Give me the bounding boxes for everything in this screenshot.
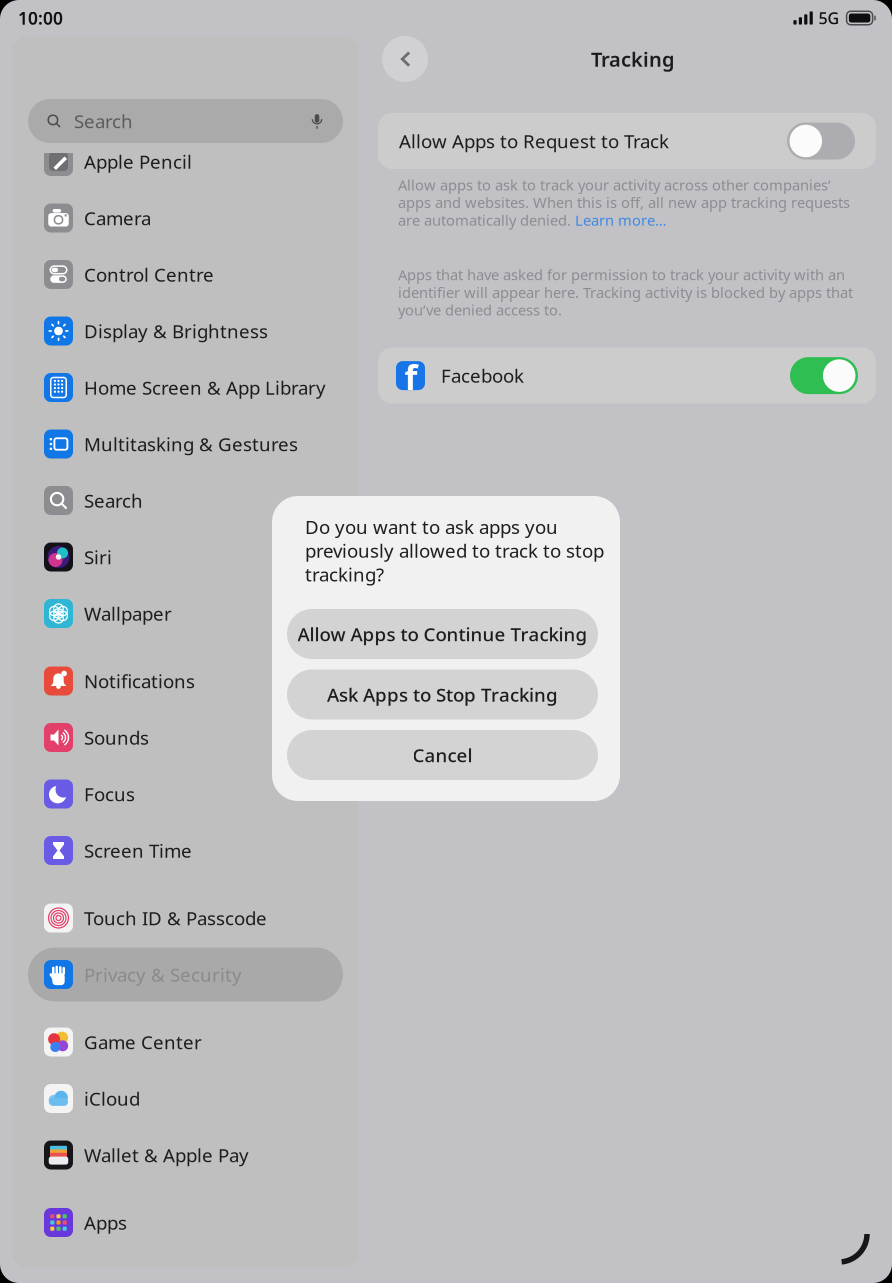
button[interactable]: Learn more… bbox=[575, 211, 667, 229]
staticText: Apple Pencil bbox=[84, 149, 192, 174]
button[interactable]: Apps bbox=[28, 1195, 343, 1249]
staticText: Apps that have asked for permission to t… bbox=[398, 265, 845, 284]
staticText: 5G bbox=[819, 7, 840, 29]
staticText: Search bbox=[74, 109, 133, 133]
staticText: Allow Apps to Continue Tracking bbox=[297, 622, 587, 646]
staticText: Ask Apps to Stop Tracking bbox=[327, 682, 558, 707]
staticText: Camera bbox=[84, 206, 151, 230]
staticText: previously allowed to track to stop bbox=[305, 538, 604, 563]
staticText: Do you want to ask apps you bbox=[305, 514, 558, 539]
button[interactable]: Wallet & Apple Pay bbox=[28, 1128, 343, 1182]
staticText: Notifications bbox=[84, 669, 195, 693]
staticText: Privacy & Security bbox=[84, 962, 242, 987]
button[interactable]: Focus bbox=[28, 767, 343, 821]
staticText: Wallpaper bbox=[84, 601, 172, 626]
staticText: Game Center bbox=[84, 1030, 202, 1054]
button[interactable]: Search bbox=[28, 473, 343, 527]
staticText: are automatically denied. bbox=[398, 210, 575, 230]
button[interactable]: Allow Apps to Request to Track bbox=[787, 122, 855, 159]
staticText: Search bbox=[84, 488, 143, 513]
button[interactable]: Wallpaper bbox=[28, 586, 343, 640]
button[interactable]: Siri bbox=[28, 530, 343, 584]
staticText: Sounds bbox=[84, 725, 149, 750]
staticText: tracking? bbox=[305, 562, 384, 587]
button[interactable]: Touch ID & Passcode bbox=[28, 891, 343, 945]
staticText: f bbox=[405, 355, 418, 399]
staticText: Siri bbox=[84, 545, 112, 569]
staticText: Screen Time bbox=[84, 838, 192, 863]
staticText: identifier will appear here. Tracking ac… bbox=[398, 282, 853, 302]
button[interactable]: Cancel bbox=[287, 730, 598, 780]
staticText: Allow Apps to Request to Track bbox=[399, 129, 669, 153]
button[interactable]: Camera bbox=[28, 191, 343, 245]
button[interactable]: Control Centre bbox=[28, 247, 343, 301]
staticText: Apps bbox=[84, 1210, 127, 1235]
staticText: apps and websites. When this is off, all… bbox=[398, 193, 850, 212]
button[interactable]: Notifications bbox=[28, 654, 343, 708]
button[interactable]: Ask Apps to Stop Tracking bbox=[287, 669, 598, 719]
button[interactable]: Facebook tracking bbox=[790, 357, 858, 394]
staticText: you’ve denied access to. bbox=[398, 300, 562, 320]
button[interactable]: Privacy & Security bbox=[28, 947, 343, 1001]
staticText: Touch ID & Passcode bbox=[84, 906, 267, 930]
button[interactable]: Allow Apps to Continue Tracking bbox=[287, 609, 598, 659]
staticText: Wallet & Apple Pay bbox=[84, 1143, 249, 1167]
button[interactable]: Screen Time bbox=[28, 823, 343, 877]
staticText: Facebook bbox=[441, 363, 524, 388]
staticText: Home Screen & App Library bbox=[84, 375, 326, 400]
staticText: Display & Brightness bbox=[84, 319, 268, 343]
button[interactable]: Back bbox=[382, 36, 428, 82]
staticText: Allow apps to ask to track your activity… bbox=[398, 175, 831, 195]
button[interactable]: Game Center bbox=[28, 1015, 343, 1069]
button[interactable]: Multitasking & Gestures bbox=[28, 417, 343, 471]
staticText: iCloud bbox=[84, 1086, 140, 1111]
button[interactable]: Home Screen & App Library bbox=[28, 360, 343, 414]
button[interactable]: Search bbox=[28, 99, 343, 143]
staticText: Control Centre bbox=[84, 262, 214, 287]
staticText: Focus bbox=[84, 782, 135, 806]
button[interactable]: Display & Brightness bbox=[28, 304, 343, 358]
staticText: Cancel bbox=[412, 743, 472, 767]
button[interactable]: Sounds bbox=[28, 710, 343, 764]
staticText: Multitasking & Gestures bbox=[84, 432, 298, 456]
staticText: 10:00 bbox=[18, 6, 63, 29]
button[interactable]: iCloud bbox=[28, 1071, 343, 1125]
button[interactable]: Apple Pencil bbox=[28, 134, 343, 188]
staticText: Tracking bbox=[591, 46, 675, 72]
staticText: Learn more… bbox=[575, 210, 667, 230]
